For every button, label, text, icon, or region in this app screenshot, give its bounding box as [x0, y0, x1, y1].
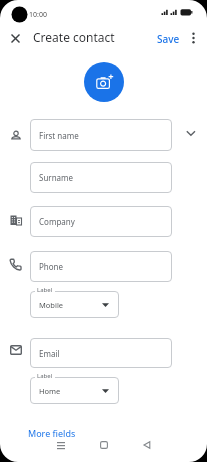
button[interactable]: First name	[30, 119, 172, 151]
staticText: Mobile	[39, 300, 64, 310]
staticText: Email	[39, 348, 60, 359]
button[interactable]: Mobile	[30, 291, 119, 318]
staticText: Label	[37, 372, 53, 380]
staticText: Create contact	[33, 29, 115, 45]
button[interactable]	[56, 441, 66, 450]
button[interactable]	[189, 32, 198, 44]
button[interactable]	[10, 33, 21, 44]
button[interactable]	[100, 441, 108, 449]
button[interactable]: Company	[30, 206, 172, 237]
staticText: Phone	[39, 261, 64, 272]
button[interactable]	[143, 441, 151, 449]
button[interactable]	[186, 130, 196, 137]
staticText: Company	[39, 216, 75, 227]
staticText: 10:00	[29, 10, 47, 20]
button[interactable]: Surname	[30, 162, 172, 193]
button[interactable]: Home	[30, 377, 119, 404]
staticText: First name	[39, 130, 79, 141]
button[interactable]: Save	[157, 32, 180, 46]
button[interactable]: More fields	[28, 427, 76, 439]
button[interactable]: Email	[30, 338, 172, 368]
button[interactable]	[84, 62, 124, 102]
staticText: Surname	[39, 172, 74, 183]
staticText: Home	[39, 386, 61, 396]
staticText: Label	[37, 286, 53, 294]
button[interactable]: Phone	[30, 251, 172, 282]
